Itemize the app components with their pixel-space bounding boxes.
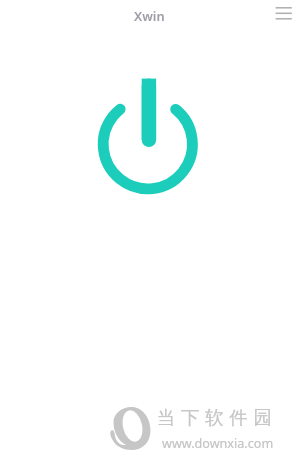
button[interactable]: Power	[92, 72, 204, 202]
staticText: Xwin	[134, 7, 165, 24]
button[interactable]: Menu	[268, 0, 294, 26]
staticText: www.downxia.com	[162, 435, 274, 452]
staticText: 当下软件园	[157, 406, 278, 429]
